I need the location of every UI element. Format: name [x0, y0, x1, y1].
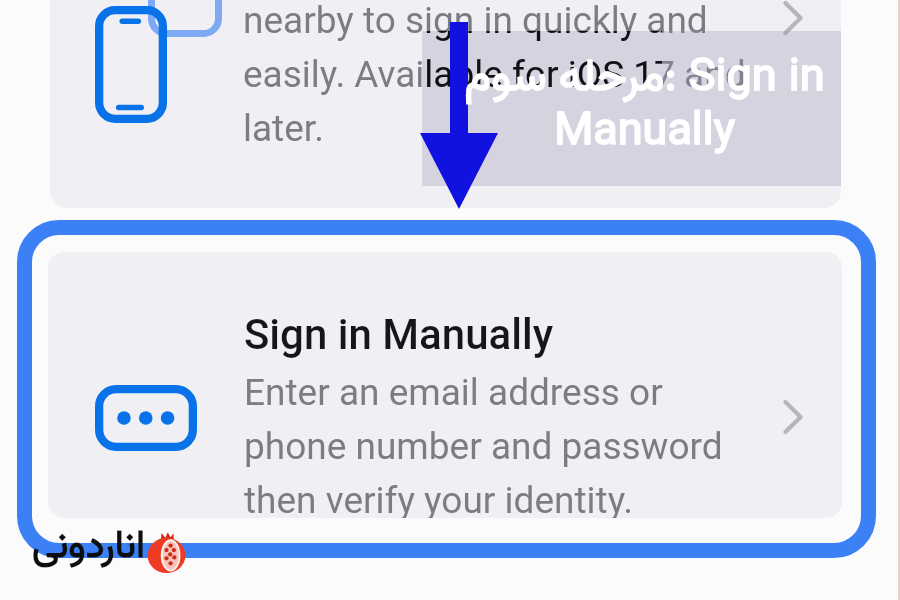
staticText: مرحله سوم: Sign in Manually [435, 44, 854, 169]
staticText: nearby to sign in quickly and [243, 0, 708, 42]
other: Open [783, 400, 803, 434]
staticText: Sign in Manually [244, 310, 554, 359]
button[interactable]: Sign in Manually [48, 252, 842, 518]
button[interactable] [50, 0, 841, 208]
staticText: phone number and password [244, 425, 723, 468]
staticText: Enter an email address or [244, 371, 663, 414]
staticText: then verify your identity. [244, 479, 634, 518]
staticText: اناردونی [0, 517, 145, 578]
other: Open [783, 1, 803, 35]
staticText: later. [243, 107, 324, 150]
staticText: easily. Available for iOS 17 and [422, 53, 662, 96]
staticText: nearby to sign in quickly and [422, 31, 662, 42]
staticText: easily. Available for iOS 17 and [243, 53, 746, 96]
